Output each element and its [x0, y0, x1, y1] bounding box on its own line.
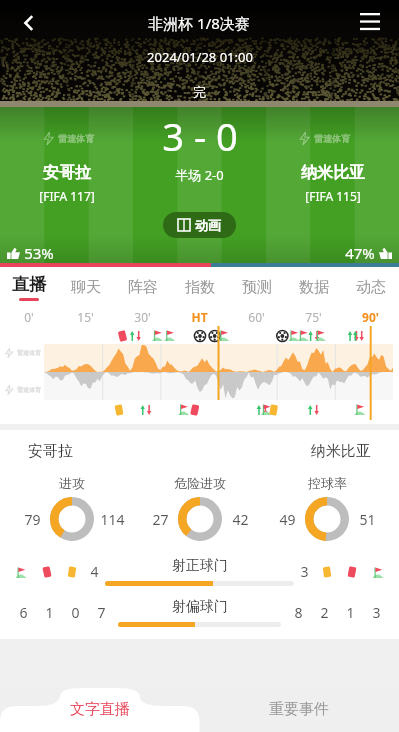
staticText: 安哥拉: [28, 442, 73, 461]
staticText: 60': [248, 309, 265, 325]
button[interactable]: Back: [12, 6, 46, 40]
button[interactable]: 文字直播: [0, 686, 199, 732]
staticText: 0': [24, 309, 34, 325]
staticText: 射偏球门: [172, 598, 228, 616]
staticText: 预测: [242, 278, 272, 297]
staticText: [FIFA 117]: [39, 188, 95, 204]
staticText: 数据: [299, 278, 329, 297]
staticText: 30': [134, 309, 151, 325]
staticText: 聊天: [71, 278, 101, 297]
staticText: 非洲杯 1/8决赛: [148, 13, 250, 33]
staticText: 51: [359, 510, 376, 529]
button[interactable]: Menu: [353, 6, 387, 40]
staticText: 3: [372, 603, 381, 622]
staticText: 控球率: [308, 475, 347, 491]
button[interactable]: 指数: [171, 267, 228, 307]
staticText: 6: [19, 603, 28, 622]
staticText: 直播: [12, 274, 46, 295]
staticText: 90': [362, 309, 379, 325]
button[interactable]: 动态: [342, 267, 399, 307]
button[interactable]: 动画: [163, 212, 236, 238]
staticText: 114: [100, 510, 125, 529]
staticText: 动画: [195, 217, 221, 233]
staticText: 8: [294, 603, 303, 622]
staticText: 53%: [24, 243, 54, 263]
staticText: 47%: [345, 243, 375, 263]
staticText: 射正球门: [172, 557, 228, 575]
button[interactable]: 数据: [285, 267, 342, 307]
staticText: 7: [97, 603, 106, 622]
staticText: 指数: [185, 278, 215, 297]
staticText: 79: [24, 510, 41, 529]
staticText: 安哥拉: [43, 163, 91, 183]
staticText: 0: [71, 603, 80, 622]
staticText: 49: [279, 510, 296, 529]
staticText: 2024/01/28 01:00: [147, 48, 253, 66]
staticText: 3: [300, 562, 309, 581]
staticText: 15': [77, 309, 94, 325]
staticText: 3 - 0: [162, 110, 238, 162]
button[interactable]: 阵容: [114, 267, 171, 307]
staticText: 雷速体育: [17, 349, 41, 357]
staticText: 完: [193, 84, 206, 100]
staticText: 进攻: [59, 475, 85, 491]
staticText: 重要事件: [269, 700, 329, 719]
staticText: 1: [45, 603, 54, 622]
staticText: 文字直播: [70, 700, 130, 719]
button[interactable]: 预测: [228, 267, 285, 307]
button[interactable]: 重要事件: [199, 686, 399, 732]
staticText: 雷速体育: [58, 133, 94, 144]
staticText: 危险进攻: [174, 475, 226, 491]
staticText: 雷速体育: [17, 386, 41, 394]
staticText: [FIFA 115]: [305, 188, 361, 204]
button[interactable]: 直播: [0, 267, 57, 307]
staticText: 雷速体育: [314, 133, 350, 144]
staticText: 动态: [356, 278, 386, 297]
staticText: 4: [90, 562, 99, 581]
staticText: 纳米比亚: [301, 163, 365, 183]
staticText: 27: [152, 510, 169, 529]
button[interactable]: 聊天: [57, 267, 114, 307]
staticText: 纳米比亚: [311, 442, 371, 461]
staticText: 1: [346, 603, 355, 622]
staticText: 42: [232, 510, 249, 529]
staticText: 阵容: [128, 278, 158, 297]
staticText: 75': [305, 309, 322, 325]
staticText: HT: [191, 309, 208, 325]
staticText: 2: [320, 603, 329, 622]
staticText: 半场 2-0: [175, 166, 224, 184]
